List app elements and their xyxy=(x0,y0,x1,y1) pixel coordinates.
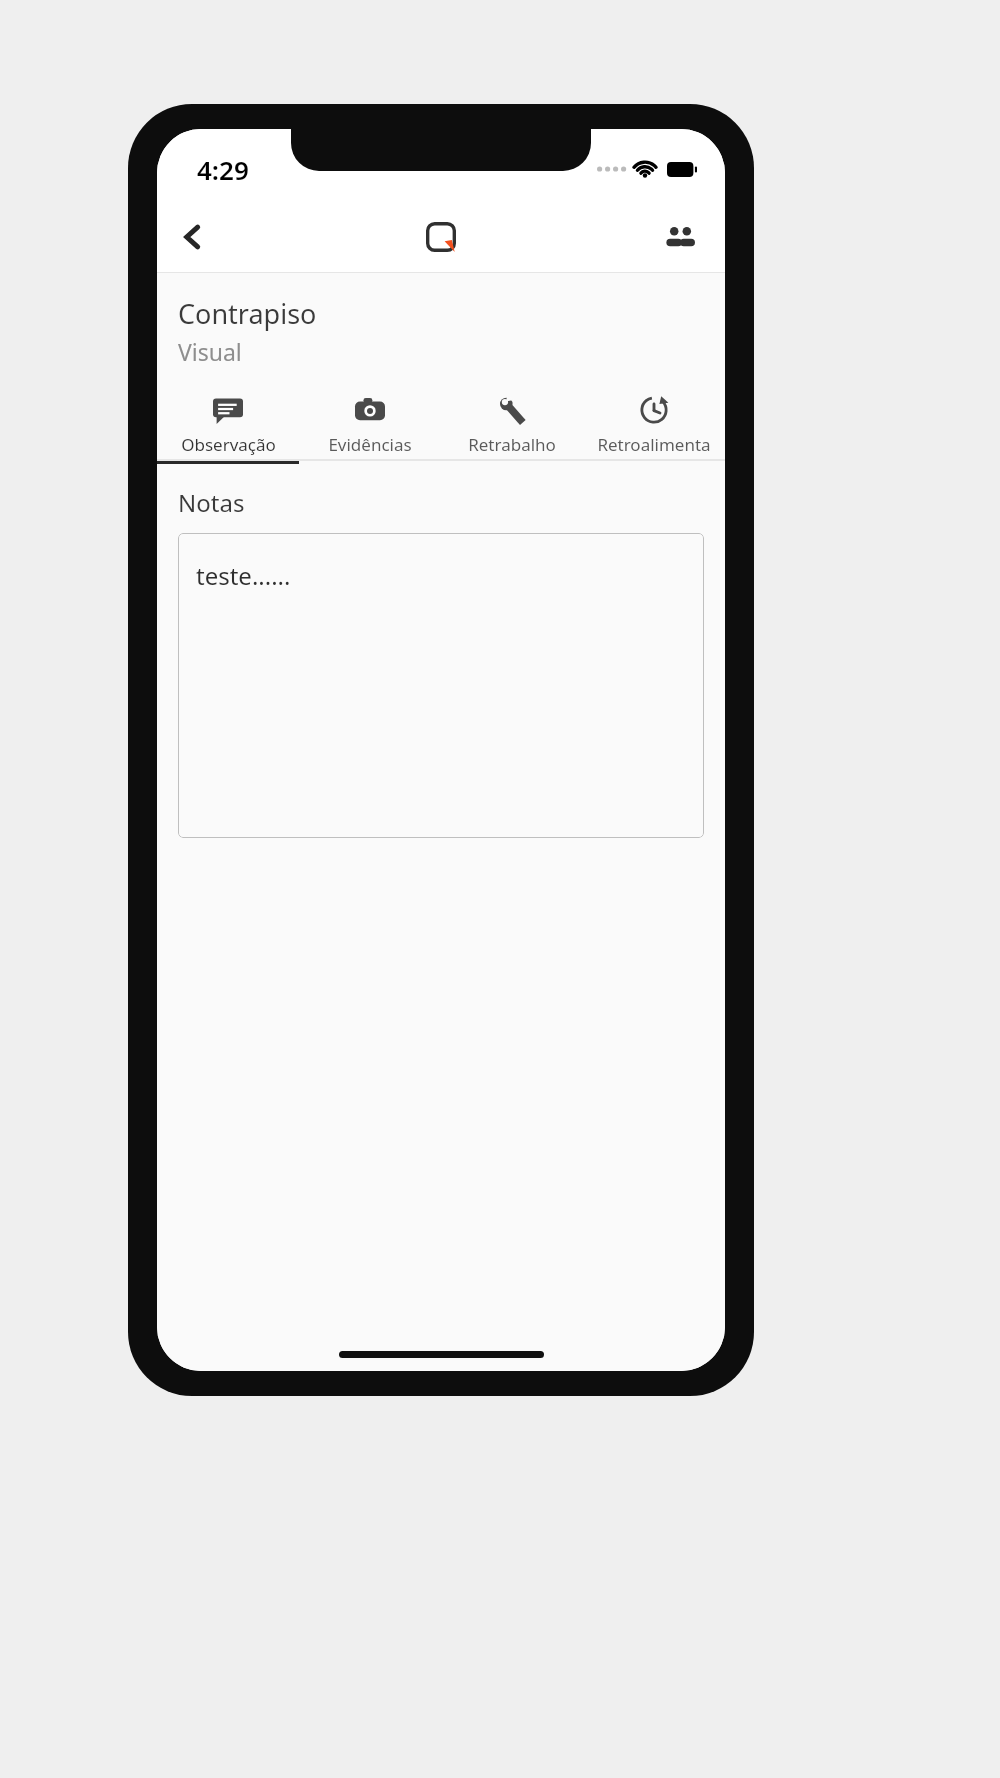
button[interactable]: Observação xyxy=(157,389,299,459)
button[interactable]: Back xyxy=(165,209,221,265)
button[interactable]: People xyxy=(653,210,707,264)
staticText: 4:29 xyxy=(197,152,249,187)
staticText: Notas xyxy=(178,486,245,519)
button[interactable]: Retroalimenta ção xyxy=(583,389,725,459)
staticText: teste...... xyxy=(196,559,291,592)
staticText: Observação xyxy=(181,433,276,456)
staticText: Retroalimenta ção xyxy=(597,433,711,459)
staticText: Visual xyxy=(178,336,242,367)
button[interactable]: Evidências xyxy=(299,389,441,459)
staticText: Contrapiso xyxy=(178,295,317,332)
staticText: Retrabalho xyxy=(468,433,556,456)
staticText: Evidências xyxy=(328,433,412,456)
button[interactable]: Retrabalho xyxy=(441,389,583,459)
button[interactable]: teste...... xyxy=(178,533,704,838)
